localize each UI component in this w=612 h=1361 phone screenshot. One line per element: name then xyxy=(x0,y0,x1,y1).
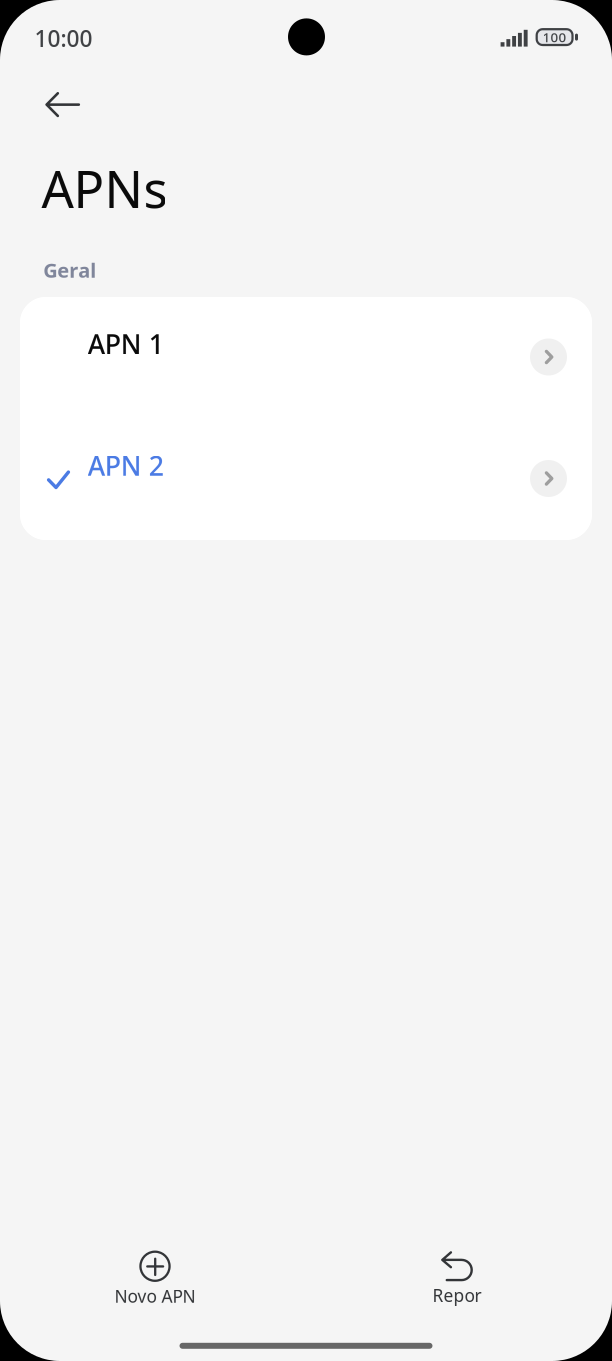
staticText: APNs xyxy=(41,155,167,222)
button[interactable]: Repor xyxy=(391,1251,523,1307)
button[interactable]: Back xyxy=(33,81,91,129)
staticText: 100 xyxy=(543,28,567,46)
staticText: APN 1 xyxy=(88,326,164,362)
button[interactable]: Novo APN xyxy=(89,1251,221,1307)
staticText: APN 2 xyxy=(88,448,164,483)
button[interactable]: APN 1 xyxy=(20,297,592,418)
staticText: Repor xyxy=(432,1284,481,1307)
staticText: Novo APN xyxy=(114,1284,195,1307)
staticText: Geral xyxy=(43,257,96,283)
staticText: 10:00 xyxy=(34,23,92,53)
button[interactable]: APN 2 xyxy=(20,418,592,540)
